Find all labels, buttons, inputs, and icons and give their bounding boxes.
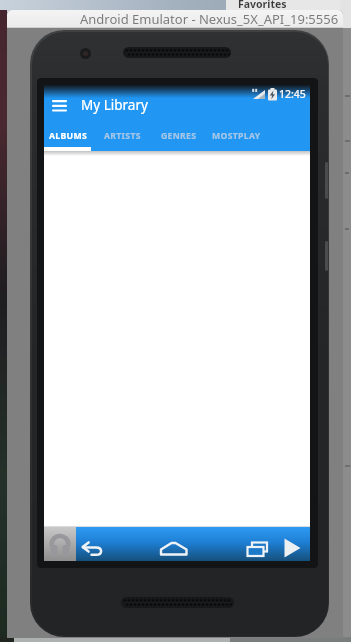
button[interactable] — [46, 93, 74, 119]
staticText: GENRES — [161, 130, 197, 142]
button[interactable] — [44, 527, 76, 561]
button[interactable]: ALBUMS — [45, 125, 91, 146]
staticText: ARTISTS — [104, 130, 141, 142]
staticText: Android Emulator - Nexus_5X_API_19:5556 — [80, 10, 339, 28]
button[interactable]: GENRES — [151, 125, 207, 146]
staticText: ALBUMS — [49, 130, 87, 142]
staticText: Favorites — [238, 0, 287, 11]
button[interactable] — [80, 537, 112, 559]
button[interactable] — [244, 539, 270, 561]
button[interactable] — [158, 538, 192, 558]
button[interactable]: MOSTPLAY — [208, 125, 265, 146]
button[interactable] — [282, 536, 306, 560]
staticText: My Library — [81, 96, 148, 114]
staticText: 12:45 — [279, 87, 306, 101]
button[interactable]: ARTISTS — [94, 125, 150, 146]
staticText: MOSTPLAY — [212, 130, 261, 142]
